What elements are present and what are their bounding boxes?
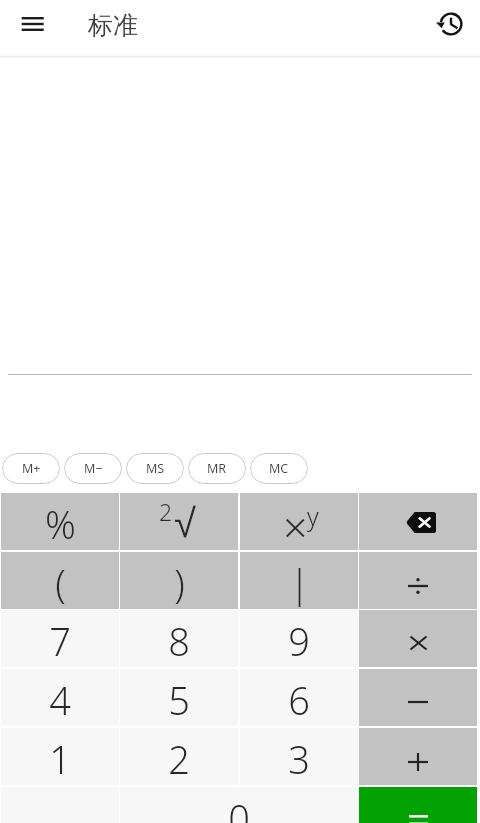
staticText: 2 [168, 733, 190, 785]
button[interactable] [359, 728, 477, 785]
button[interactable]: 3 [240, 728, 358, 785]
button[interactable]: Equals [359, 787, 477, 823]
button[interactable]: 6 [240, 669, 358, 726]
button[interactable]: Backspace [359, 493, 477, 550]
button[interactable] [359, 610, 477, 667]
staticText: 9 [288, 615, 310, 667]
staticText: × [283, 497, 308, 554]
staticText: 6 [288, 674, 310, 726]
staticText: MS [146, 460, 165, 477]
button[interactable] [359, 669, 477, 726]
button[interactable]: M− [64, 453, 122, 484]
button[interactable]: 7 [1, 610, 119, 667]
button[interactable]: 5 [120, 669, 238, 726]
staticText: 0 [228, 792, 250, 823]
staticText: M− [84, 460, 103, 477]
button[interactable]: % [1, 493, 119, 550]
staticText: √ [174, 501, 196, 546]
staticText: | [289, 557, 310, 609]
button[interactable]: Menu [11, 2, 55, 46]
button[interactable] [359, 552, 477, 609]
button[interactable]: ( [1, 552, 119, 609]
staticText: 1 [49, 733, 71, 785]
button[interactable]: 8 [120, 610, 238, 667]
staticText: 2 [159, 496, 173, 527]
button[interactable]: Power [240, 493, 358, 550]
staticText: 3 [288, 733, 310, 785]
button[interactable]: MR [188, 453, 246, 484]
button[interactable]: 4 [1, 669, 119, 726]
button[interactable]: | [240, 552, 358, 609]
staticText: % [45, 498, 76, 550]
staticText: 7 [49, 615, 71, 667]
button[interactable]: ) [120, 552, 238, 609]
button[interactable]: MC [250, 453, 308, 484]
staticText: y [307, 499, 319, 533]
button[interactable]: 0 [120, 787, 357, 823]
button[interactable]: MS [126, 453, 184, 484]
button[interactable]: 2 [120, 728, 238, 785]
staticText: 5 [168, 674, 190, 726]
button[interactable]: Square root [120, 493, 238, 550]
staticText: 标准 [88, 10, 138, 41]
staticText: 8 [168, 615, 190, 667]
staticText: MR [207, 460, 227, 477]
button[interactable]: History [429, 2, 473, 46]
button[interactable]: M+ [2, 453, 60, 484]
staticText: MC [269, 460, 289, 477]
staticText: ( [55, 557, 66, 609]
button[interactable]: 9 [240, 610, 358, 667]
staticText: 4 [49, 674, 71, 726]
staticText: ) [174, 557, 185, 609]
button[interactable]: 1 [1, 728, 119, 785]
staticText: M+ [22, 460, 41, 477]
